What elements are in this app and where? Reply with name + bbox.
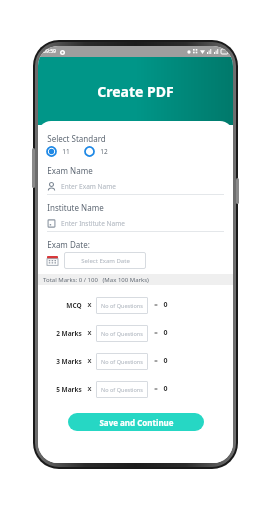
staticText: X bbox=[87, 385, 92, 393]
staticText: = bbox=[154, 301, 158, 309]
staticText: Select Standard bbox=[47, 133, 106, 144]
staticText: 0 bbox=[163, 328, 168, 338]
staticText: 0 bbox=[163, 356, 168, 366]
staticText: Enter Exam Name bbox=[61, 182, 116, 191]
button[interactable]: No of Questions bbox=[96, 297, 148, 314]
staticText: X bbox=[87, 329, 92, 337]
staticText: MCQ bbox=[66, 301, 82, 310]
button[interactable]: Institute bbox=[47, 216, 233, 231]
staticText: 11 bbox=[62, 147, 70, 156]
button[interactable]: No of Questions bbox=[96, 353, 148, 370]
staticText: 5 Marks bbox=[56, 385, 82, 394]
staticText: Select Exam Date bbox=[81, 257, 130, 265]
staticText: = bbox=[154, 385, 158, 393]
staticText: No of Questions bbox=[101, 330, 143, 337]
staticText: No of Questions bbox=[101, 358, 143, 365]
staticText: Create PDF bbox=[97, 82, 174, 101]
staticText: Total Marks: 0 / 100 (Max 100 Marks) bbox=[43, 276, 149, 284]
button[interactable]: Select Exam Date bbox=[64, 252, 146, 269]
staticText: Exam Date: bbox=[47, 239, 90, 250]
button[interactable]: Person bbox=[47, 179, 233, 194]
button[interactable]: Save and Continue bbox=[68, 413, 204, 431]
button[interactable]: Create PDF bbox=[97, 82, 174, 101]
button[interactable]: 11 bbox=[46, 146, 70, 157]
staticText: 0 bbox=[163, 300, 168, 310]
staticText: 2 Marks bbox=[56, 329, 82, 338]
staticText: 09:59 bbox=[43, 48, 56, 55]
staticText: No of Questions bbox=[101, 386, 143, 393]
staticText: No of Questions bbox=[101, 302, 143, 309]
other: Institute bbox=[47, 219, 56, 228]
staticText: X bbox=[87, 357, 92, 365]
staticText: X bbox=[87, 301, 92, 309]
staticText: = bbox=[154, 329, 158, 337]
staticText: 0 bbox=[163, 384, 168, 394]
staticText: Enter Institute Name bbox=[61, 219, 125, 228]
staticText: 3 Marks bbox=[56, 357, 82, 366]
button[interactable]: No of Questions bbox=[96, 325, 148, 342]
staticText: Exam Name bbox=[47, 165, 93, 176]
staticText: 12 bbox=[100, 147, 108, 156]
staticText: Save and Continue bbox=[99, 417, 174, 428]
other: Pick date bbox=[47, 255, 58, 266]
button[interactable]: 12 bbox=[84, 146, 108, 157]
staticText: = bbox=[154, 357, 158, 365]
staticText: Institute Name bbox=[47, 202, 104, 213]
other: Person bbox=[47, 182, 56, 191]
button[interactable]: No of Questions bbox=[96, 381, 148, 398]
